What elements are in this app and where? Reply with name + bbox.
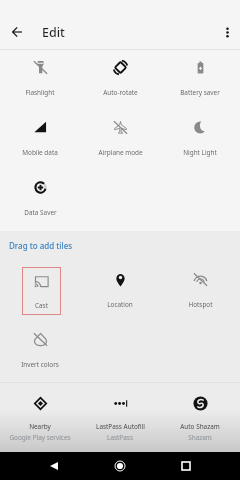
button[interactable]: Night Light xyxy=(160,110,240,170)
button[interactable]: Mobile data xyxy=(0,110,80,170)
staticText: Invert colors xyxy=(21,360,59,369)
staticText: Drag to add tiles xyxy=(9,240,73,251)
staticText: Google Play services xyxy=(9,433,71,442)
button[interactable]: Back xyxy=(3,18,31,46)
button[interactable]: Recent apps xyxy=(163,452,209,480)
button[interactable]: Hotspot xyxy=(160,262,240,322)
staticText: Night Light xyxy=(183,148,217,157)
button[interactable]: LastPass Autofill xyxy=(80,396,160,442)
staticText: Airplane mode xyxy=(98,148,143,157)
button[interactable]: Auto-rotate xyxy=(80,50,160,110)
staticText: Battery saver xyxy=(180,88,220,97)
button[interactable]: Home xyxy=(97,452,143,480)
button[interactable]: Airplane mode xyxy=(80,110,160,170)
staticText: Nearby xyxy=(29,422,51,431)
button[interactable]: Data Saver xyxy=(0,170,80,230)
staticText: Flashlight xyxy=(25,88,55,97)
staticText: Mobile data xyxy=(22,148,58,157)
button[interactable]: Back xyxy=(31,452,77,480)
button[interactable]: Auto Shazam xyxy=(160,396,240,442)
staticText: LastPass xyxy=(107,433,133,442)
button[interactable]: Location xyxy=(80,262,160,322)
button[interactable]: Cast xyxy=(22,267,61,315)
button[interactable]: Nearby xyxy=(0,396,80,442)
staticText: Location xyxy=(107,300,133,309)
staticText: Shazam xyxy=(188,433,212,442)
button[interactable]: Invert colors xyxy=(0,322,80,382)
staticText: Data Saver xyxy=(24,208,57,217)
staticText: Cast xyxy=(35,301,48,310)
staticText: LastPass Autofill xyxy=(96,422,145,431)
button[interactable]: More options xyxy=(214,19,240,45)
button[interactable]: Battery saver xyxy=(160,50,240,110)
staticText: Edit xyxy=(42,24,65,41)
staticText: Hotspot xyxy=(188,300,213,309)
staticText: Auto-rotate xyxy=(103,88,138,97)
staticText: Auto Shazam xyxy=(180,422,220,431)
button[interactable]: Flashlight xyxy=(0,50,80,110)
